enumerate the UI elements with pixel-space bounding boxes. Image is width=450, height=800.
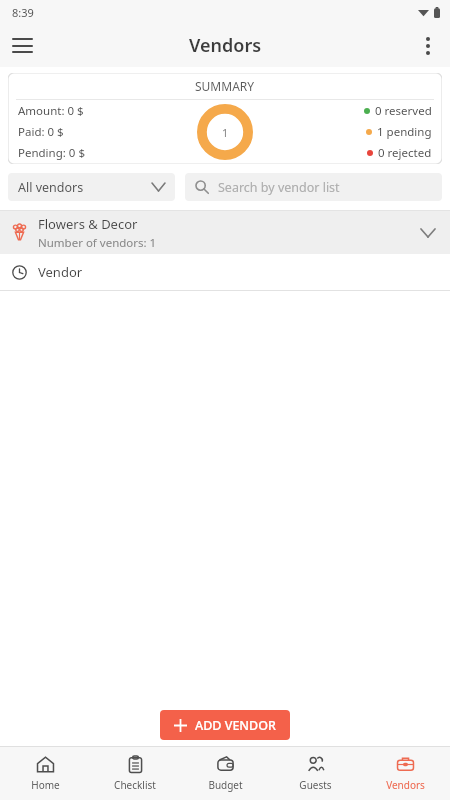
button[interactable]: ADD VENDOR [160,710,290,740]
staticText: ADD VENDOR [195,717,276,734]
staticText: Checklist [114,778,156,792]
staticText: Home [31,778,60,792]
staticText: Flowers & Decor [38,215,138,233]
staticText: Budget [208,778,243,792]
staticText: Amount: 0 $ [18,103,84,119]
button[interactable]: Home [0,747,90,800]
staticText: 1 [222,125,229,140]
staticText: 0 reserved [375,103,432,119]
button[interactable]: Vendor [0,254,450,290]
button[interactable]: Guests [270,747,360,800]
button[interactable]: All vendors [8,173,175,201]
staticText: 8:39 [12,5,34,20]
staticText: Search by vendor list [218,179,340,196]
button[interactable]: Search by vendor list [185,173,442,201]
staticText: All vendors [18,179,152,196]
staticText: Pending: 0 $ [18,145,85,161]
staticText: Vendors [189,33,262,58]
button[interactable]: Budget [180,747,270,800]
button[interactable]: More options [406,24,450,67]
staticText: Vendors [386,778,425,792]
staticText: Guests [299,778,332,792]
staticText: 0 rejected [378,145,432,161]
button[interactable]: Vendors [360,747,450,800]
button[interactable]: Open navigation menu [0,24,44,67]
staticText: Number of vendors: 1 [38,235,157,251]
button[interactable]: Flowers & Decor [0,211,450,254]
staticText: Vendor [38,263,83,281]
staticText: Paid: 0 $ [18,124,64,140]
staticText: 1 pending [377,124,432,140]
button[interactable]: Checklist [90,747,180,800]
button[interactable]: Expand category [406,211,450,254]
staticText: SUMMARY [195,78,255,94]
